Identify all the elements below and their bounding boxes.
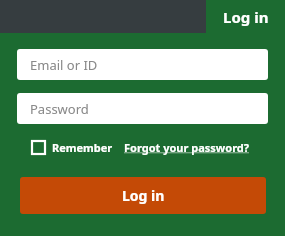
button[interactable]: Forgot your password? — [124, 138, 250, 157]
button[interactable]: Log in — [206, 0, 285, 33]
other: Remember me checkbox — [32, 141, 45, 154]
staticText: Password — [30, 100, 89, 118]
staticText: Forgot your password? — [124, 140, 250, 155]
button[interactable]: Log in — [20, 177, 266, 214]
button[interactable]: Email or ID — [17, 49, 268, 80]
button[interactable]: Remember me checkbox — [32, 138, 113, 157]
staticText: Remember — [52, 140, 113, 155]
staticText: Email or ID — [30, 56, 98, 74]
button[interactable]: Password — [17, 93, 268, 124]
staticText: Log in — [223, 7, 269, 27]
staticText: Log in — [122, 186, 165, 205]
